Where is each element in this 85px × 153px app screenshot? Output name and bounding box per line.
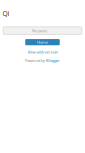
button[interactable]: Blogger xyxy=(46,58,60,63)
staticText: Powered by xyxy=(25,58,45,63)
staticText: Home xyxy=(37,39,48,45)
staticText: Blogger xyxy=(46,58,60,63)
button[interactable]: Home xyxy=(25,39,60,45)
staticText: Qi xyxy=(3,9,10,18)
staticText: View web version xyxy=(27,49,57,55)
button[interactable]: View web version xyxy=(0,49,85,55)
staticText: No posts. xyxy=(32,28,48,33)
